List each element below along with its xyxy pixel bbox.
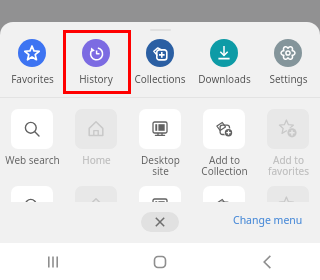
staticText: Desktop site <box>141 153 180 178</box>
button[interactable]: Collections <box>128 39 192 86</box>
button[interactable]: Desktop site <box>128 109 192 178</box>
button[interactable]: Web search <box>0 109 64 167</box>
button[interactable]: Settings <box>256 39 320 86</box>
button[interactable]: Home <box>64 109 128 167</box>
staticText: Collections <box>134 72 186 86</box>
staticText: Add to favorites <box>268 153 309 178</box>
staticText: Settings <box>269 72 308 86</box>
button[interactable] <box>0 186 64 202</box>
button[interactable] <box>64 186 128 202</box>
staticText: Home <box>82 153 111 167</box>
button[interactable]: Recents <box>0 243 106 280</box>
button[interactable] <box>256 186 320 202</box>
staticText: Change menu <box>233 213 303 227</box>
button[interactable] <box>128 186 192 202</box>
button[interactable]: Add to Collection <box>192 109 256 178</box>
button[interactable] <box>192 186 256 202</box>
button[interactable]: Change menu <box>233 213 303 227</box>
staticText: History <box>79 72 113 86</box>
button[interactable]: Close <box>141 212 179 232</box>
staticText: Favorites <box>11 72 54 86</box>
staticText: Add to Collection <box>201 153 248 178</box>
button[interactable]: Downloads <box>192 39 256 86</box>
button[interactable]: Home <box>106 243 213 280</box>
button[interactable]: Add to favorites <box>256 109 320 178</box>
staticText: Web search <box>5 153 60 167</box>
button[interactable]: Back <box>213 243 320 280</box>
button[interactable]: Favorites <box>0 39 64 86</box>
button[interactable]: History <box>64 39 128 86</box>
staticText: Downloads <box>198 72 251 86</box>
